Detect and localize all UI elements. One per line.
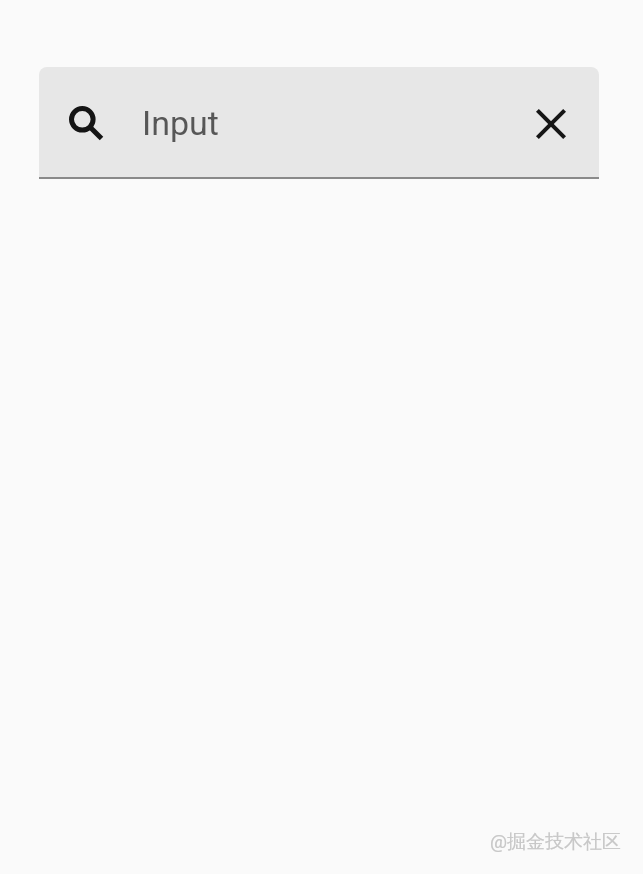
staticText: Input <box>142 103 219 143</box>
staticText: @掘金技术社区 <box>490 830 622 854</box>
button[interactable]: Search <box>39 67 599 177</box>
button[interactable]: Clear <box>502 75 599 173</box>
button[interactable]: Search <box>39 74 135 172</box>
